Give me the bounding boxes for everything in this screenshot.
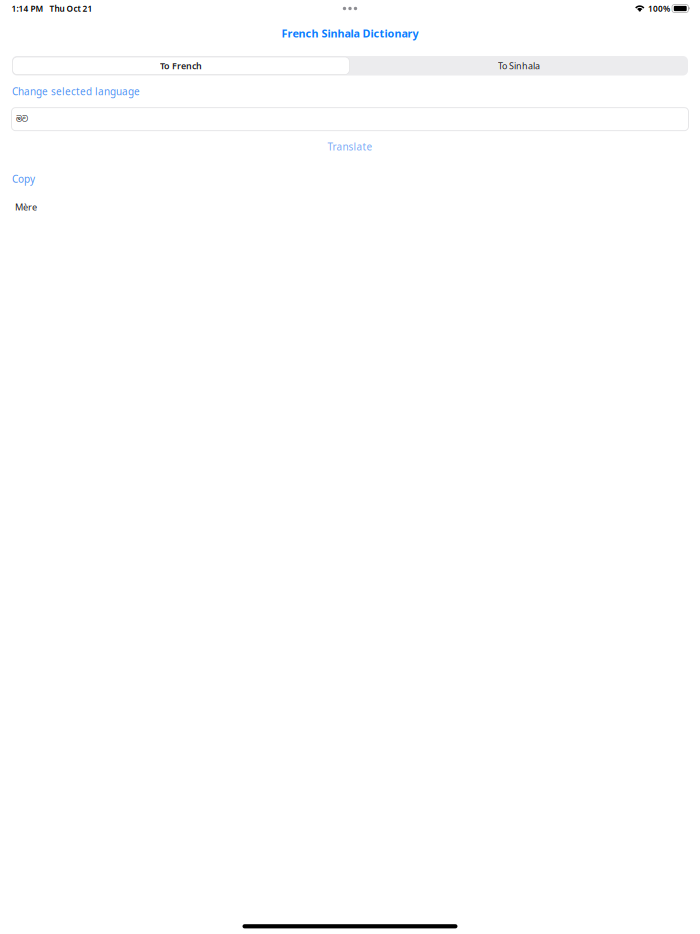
button[interactable]: Change selected language bbox=[0, 84, 700, 98]
staticText: Copy bbox=[12, 172, 35, 185]
staticText: Thu Oct 21 bbox=[49, 3, 92, 14]
staticText: To Sinhala bbox=[498, 60, 540, 72]
button[interactable]: To French bbox=[12, 56, 350, 75]
staticText: මව bbox=[16, 114, 28, 124]
staticText: Change selected language bbox=[12, 84, 140, 98]
staticText: 100% bbox=[648, 3, 670, 14]
staticText: Translate bbox=[327, 140, 372, 153]
button[interactable]: To Sinhala bbox=[350, 56, 688, 75]
staticText: To French bbox=[160, 60, 202, 72]
staticText: Mère bbox=[15, 201, 37, 213]
button[interactable]: Copy bbox=[0, 172, 700, 185]
button[interactable]: Translate bbox=[0, 140, 700, 153]
button[interactable]: Word to translate bbox=[0, 108, 700, 131]
staticText: French Sinhala Dictionary bbox=[281, 26, 418, 41]
staticText: 1:14 PM bbox=[11, 3, 43, 14]
